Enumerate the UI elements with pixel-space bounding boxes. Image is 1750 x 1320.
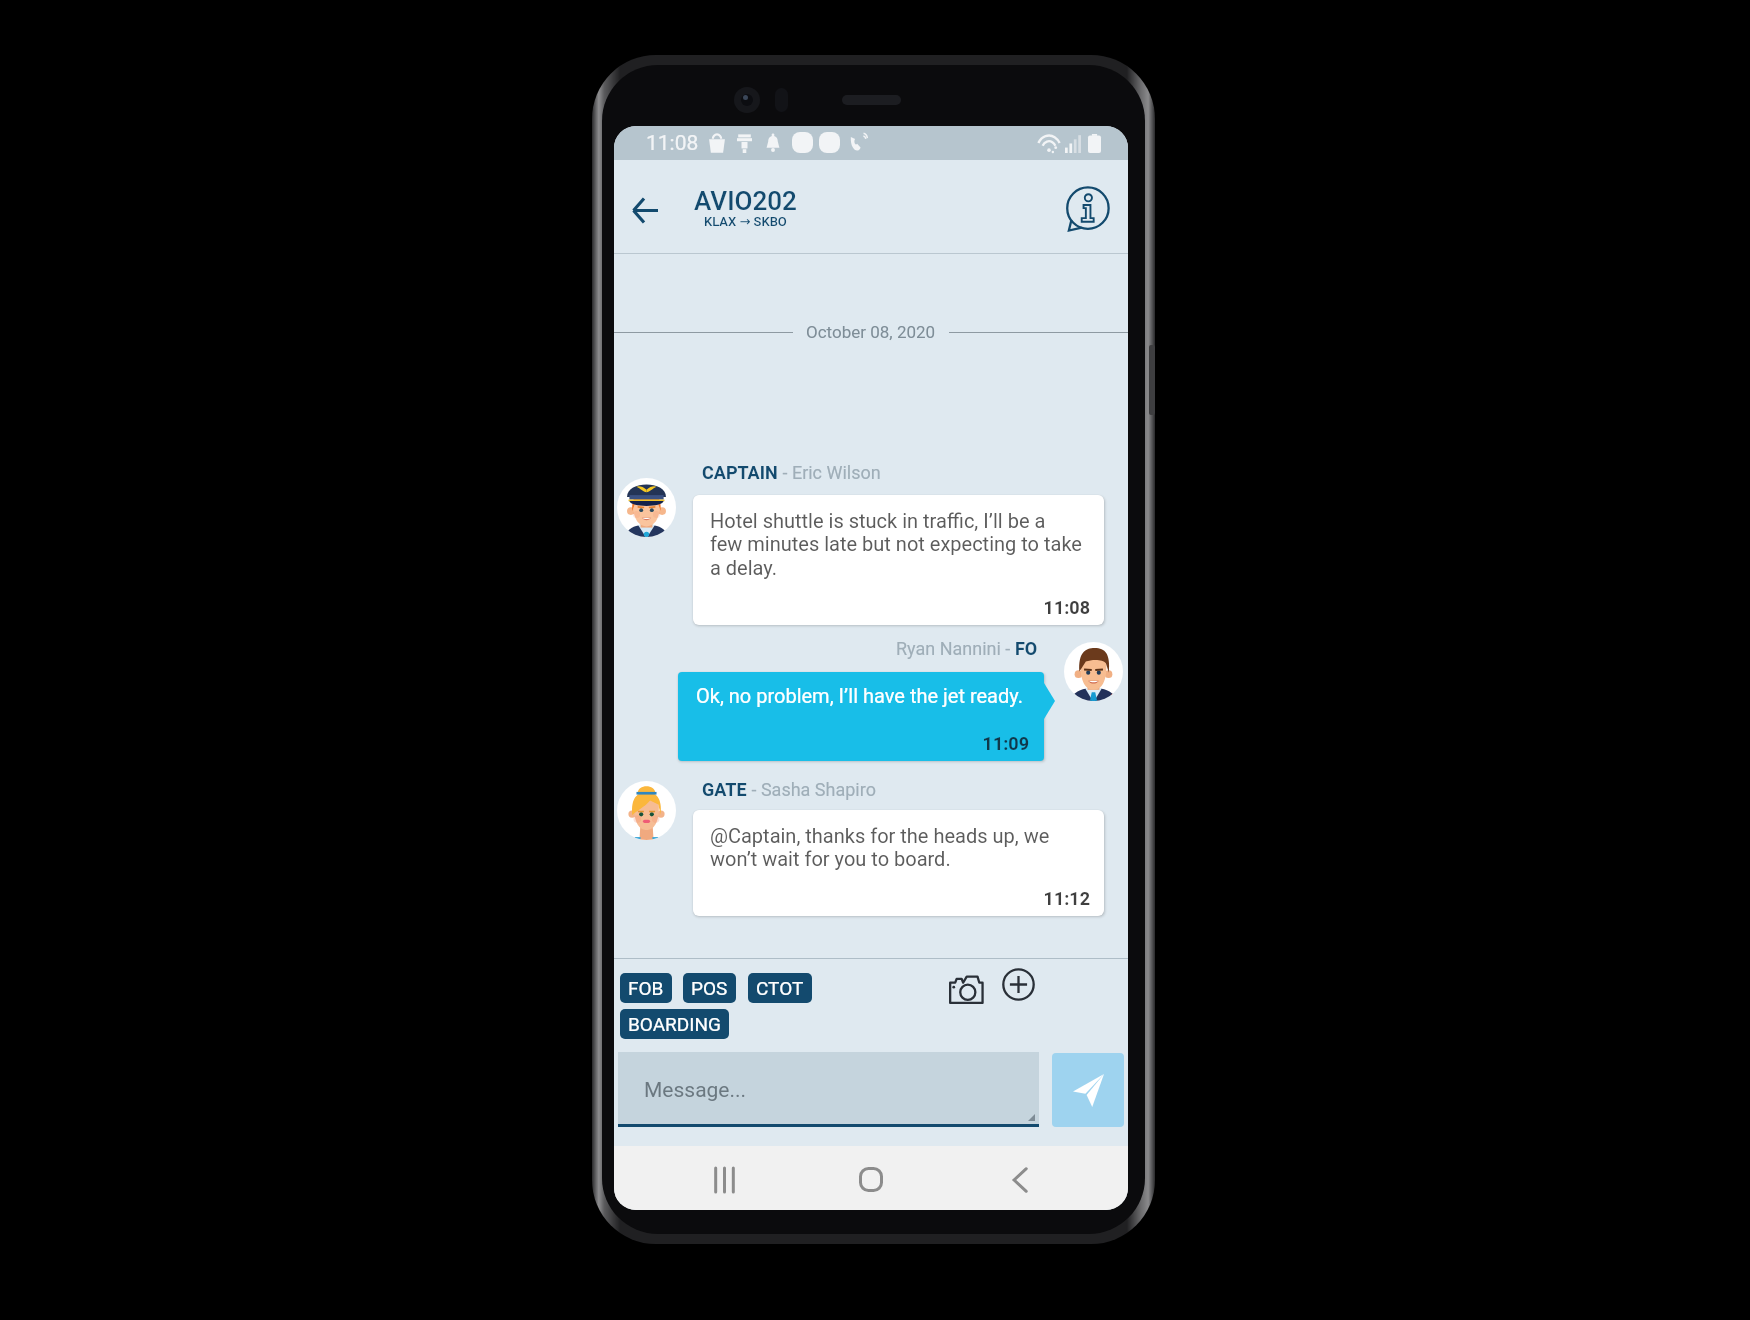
button[interactable]: Back [617, 182, 673, 238]
staticText: 11:08 [646, 131, 699, 156]
staticText: Message... [644, 1078, 747, 1103]
staticText: Ryan Nannini - [896, 638, 1015, 659]
button[interactable]: Flight information [1057, 180, 1117, 240]
button[interactable]: @Captain, thanks for the heads up, we wo… [693, 810, 1104, 916]
button[interactable]: Message input [618, 1052, 1039, 1124]
button[interactable]: Add attachment [995, 961, 1041, 1007]
button[interactable]: POS [683, 973, 736, 1003]
staticText: - Eric Wilson [778, 462, 881, 483]
staticText: Hotel shuttle is stuck in traffic, I’ll … [710, 509, 1082, 579]
button[interactable]: Send [1052, 1053, 1124, 1127]
button[interactable]: Home [849, 1157, 893, 1201]
staticText: AVIO202 [694, 186, 797, 216]
staticText: BOARDING [628, 1013, 721, 1035]
button[interactable]: Camera [943, 967, 989, 1013]
button[interactable]: BOARDING [620, 1009, 729, 1039]
button[interactable]: Hotel shuttle is stuck in traffic, I’ll … [693, 495, 1104, 625]
button[interactable]: Recent apps [702, 1158, 746, 1202]
staticText: KLAX → SKBO [704, 214, 787, 229]
staticText: FO [1015, 638, 1038, 659]
staticText: 11:12 [710, 888, 1090, 909]
button[interactable]: FOB [620, 973, 672, 1003]
staticText: FOB [628, 977, 664, 999]
staticText: CTOT [756, 977, 804, 999]
staticText: October 08, 2020 [806, 322, 936, 342]
staticText: 11:08 [710, 597, 1090, 618]
staticText: POS [691, 977, 728, 999]
staticText: CAPTAIN [702, 462, 778, 483]
staticText: 11:09 [696, 733, 1029, 754]
button[interactable]: CTOT [748, 973, 812, 1003]
staticText: GATE [702, 779, 747, 800]
staticText: Ok, no problem, I’ll have the jet ready. [696, 684, 1023, 707]
button[interactable]: Back [998, 1158, 1042, 1202]
staticText: @Captain, thanks for the heads up, we wo… [710, 824, 1050, 870]
staticText: - Sasha Shapiro [747, 779, 876, 800]
button[interactable]: Ok, no problem, I’ll have the jet ready. [678, 672, 1044, 761]
